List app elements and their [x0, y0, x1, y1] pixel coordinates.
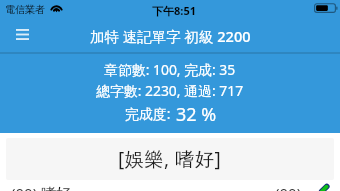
staticText: 下午8:51: [152, 3, 196, 18]
button[interactable]: (00) 嗜好: [0, 181, 340, 191]
staticText: 電信業者: [5, 3, 45, 16]
staticText: 加特 速記單字 初級 2200: [90, 26, 251, 46]
staticText: [娛樂, 嗜好]: [118, 146, 222, 172]
button[interactable]: Menu: [10, 22, 34, 46]
staticText: 完成度:: [125, 104, 171, 123]
staticText: 32 %: [176, 102, 217, 127]
staticText: (00): [275, 183, 302, 191]
staticText: 總字數: 2230, 通過: 717: [96, 81, 244, 100]
staticText: (00) 嗜好: [11, 183, 72, 191]
staticText: 章節數: 100, 完成: 35: [104, 60, 236, 79]
button[interactable]: [娛樂, 嗜好]: [6, 138, 334, 180]
other: Edit: [319, 184, 336, 191]
